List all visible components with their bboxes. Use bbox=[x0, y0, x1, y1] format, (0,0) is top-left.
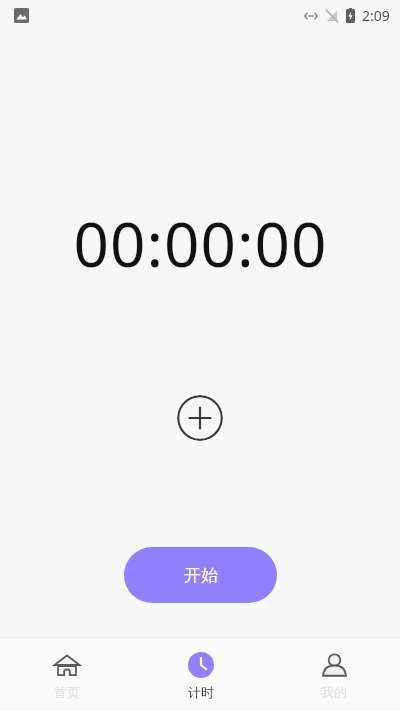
button[interactable]: 计时 bbox=[134, 638, 267, 711]
staticText: 我的 bbox=[321, 684, 347, 700]
button[interactable]: Add lap bbox=[177, 395, 223, 441]
button[interactable]: 我的 bbox=[267, 638, 400, 711]
staticText: 计时 bbox=[188, 684, 214, 700]
button[interactable]: 开始 bbox=[124, 547, 277, 603]
staticText: 首页 bbox=[54, 684, 80, 700]
staticText: 开始 bbox=[184, 565, 218, 586]
button[interactable]: 首页 bbox=[0, 638, 134, 711]
staticText: 00:00:00 bbox=[73, 201, 328, 285]
staticText: 2:09 bbox=[362, 6, 390, 25]
